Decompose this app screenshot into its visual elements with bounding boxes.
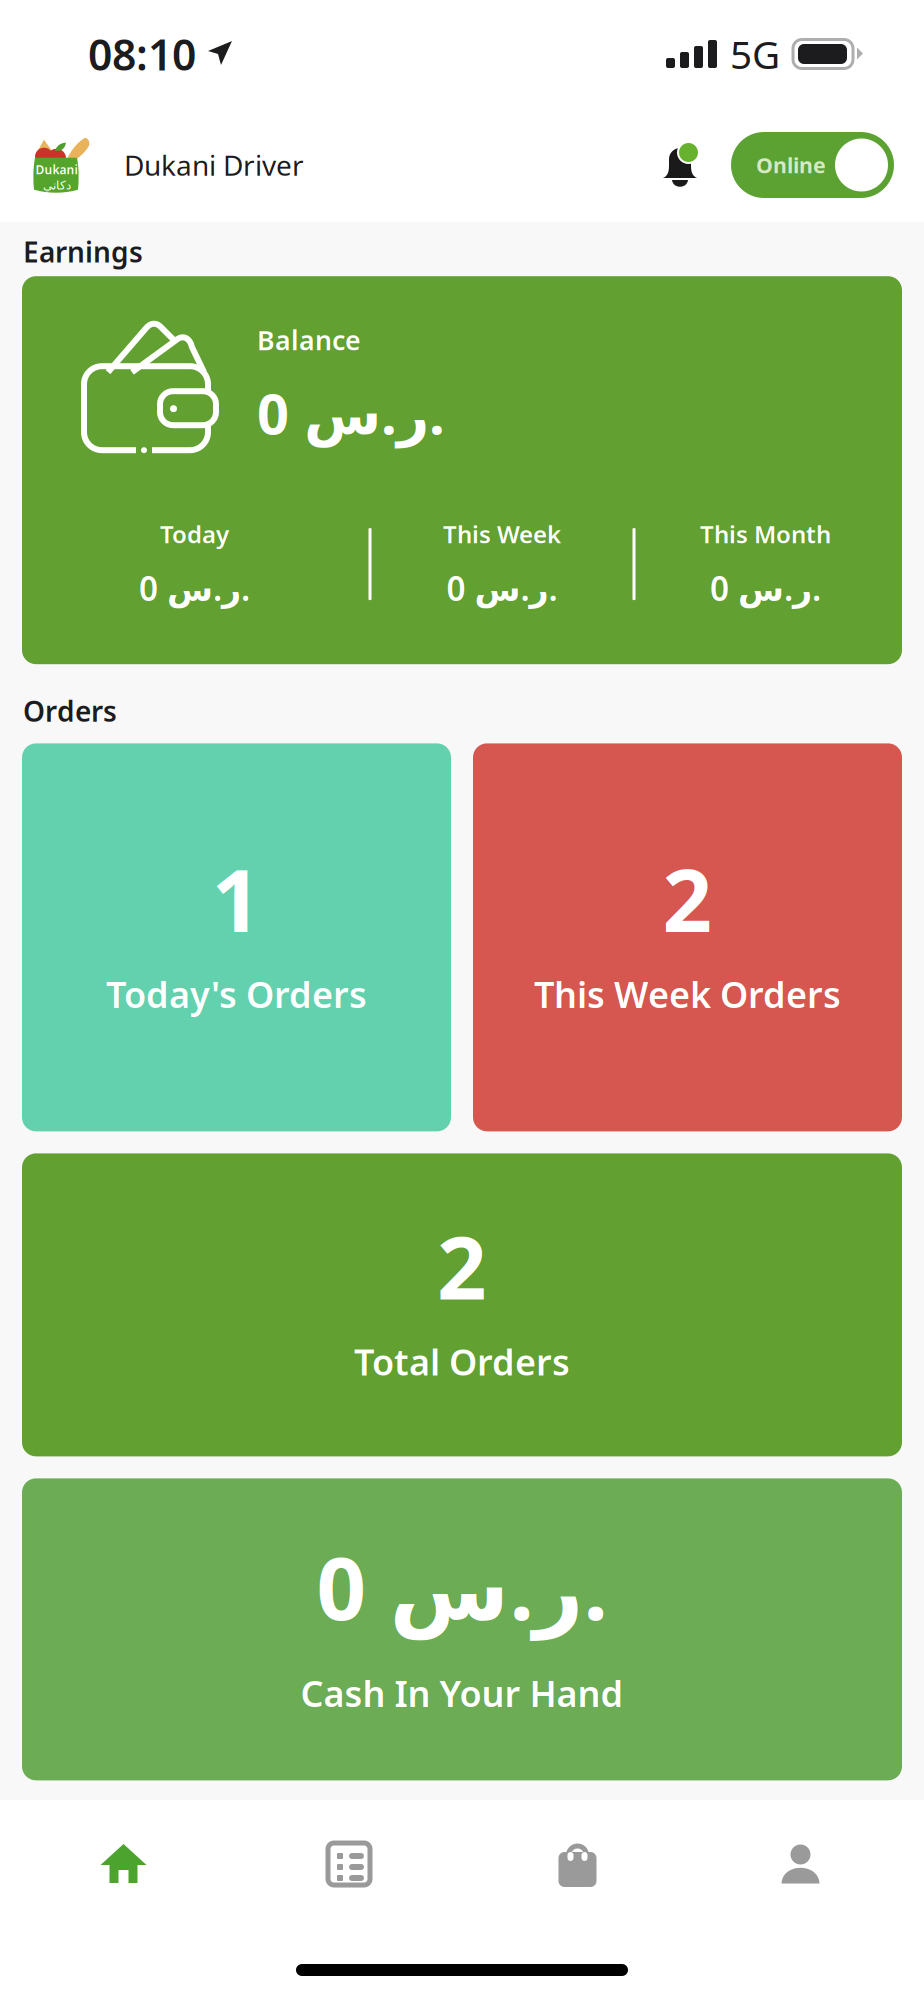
staticText: 1 xyxy=(211,841,261,956)
staticText: Online xyxy=(756,151,826,179)
button[interactable]: Orders xyxy=(231,1811,462,1917)
staticText: Total Orders xyxy=(354,1337,570,1385)
staticText: Today's Orders xyxy=(106,970,367,1018)
staticText: Today xyxy=(160,518,229,550)
staticText: This Month xyxy=(700,518,831,550)
button[interactable]: Online xyxy=(731,132,894,198)
button[interactable]: ‪0 ر.س.‬ xyxy=(22,1478,902,1780)
button[interactable]: 1 xyxy=(22,743,451,1131)
button[interactable]: Shop xyxy=(462,1811,693,1917)
staticText: Cash In Your Hand xyxy=(300,1669,623,1717)
staticText: This Week Orders xyxy=(534,970,841,1018)
staticText: ‪0 ر.س.‬ xyxy=(257,376,445,450)
staticText: 2 xyxy=(662,841,712,956)
button[interactable]: 2 xyxy=(22,1153,902,1456)
staticText: دكاني xyxy=(42,179,70,192)
staticText: Dukani Driver xyxy=(124,146,304,184)
button[interactable]: Home xyxy=(0,1811,231,1917)
button[interactable]: Notifications xyxy=(653,142,707,188)
staticText: 2 xyxy=(437,1208,487,1323)
staticText: Dukani xyxy=(35,162,77,178)
staticText: Earnings xyxy=(23,233,143,270)
staticText: ‪0 ر.س.‬ xyxy=(316,1529,607,1644)
button[interactable]: Profile xyxy=(693,1811,924,1917)
staticText: 08:10 xyxy=(88,26,196,82)
staticText: ‪0 ر.س.‬ xyxy=(446,566,557,610)
staticText: 5G xyxy=(730,28,780,80)
staticText: This Week xyxy=(443,518,561,550)
staticText: ‪0 ر.س.‬ xyxy=(710,566,821,610)
staticText: ‪0 ر.س.‬ xyxy=(139,566,250,610)
staticText: Orders xyxy=(23,692,117,729)
staticText: Balance xyxy=(257,322,361,358)
button[interactable]: 2 xyxy=(473,743,902,1131)
